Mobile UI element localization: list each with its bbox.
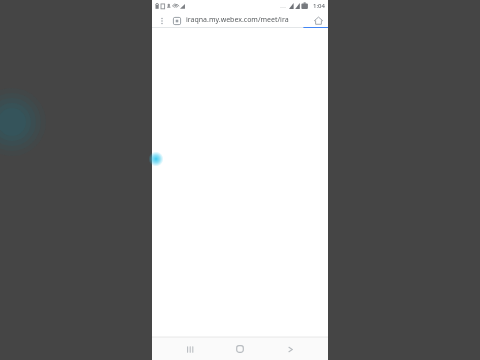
button[interactable]: Recent apps	[178, 339, 202, 359]
button[interactable]: iraqna.my.webex.com/meet/ira	[186, 12, 310, 28]
button[interactable]: Switch tabs	[170, 14, 183, 27]
button[interactable]: Back	[278, 339, 302, 359]
staticText: iraqna.my.webex.com/meet/ira	[186, 15, 289, 25]
button[interactable]: Home	[228, 339, 252, 359]
button[interactable]: Home	[312, 14, 325, 27]
staticText: 1:04	[313, 2, 325, 10]
button[interactable]: More options	[155, 14, 168, 27]
